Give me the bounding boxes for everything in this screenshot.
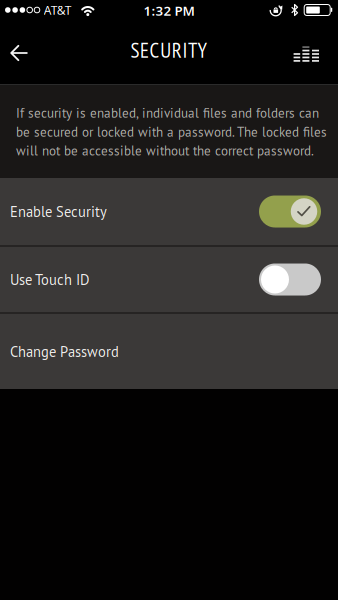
staticText: AT&T: [44, 2, 72, 18]
staticText: 1:32 PM: [143, 2, 194, 19]
button[interactable]: Use Touch ID: [259, 263, 321, 295]
staticText: be secured or locked with a password. Th…: [16, 123, 327, 140]
staticText: If security is enabled, individual files…: [16, 104, 319, 121]
staticText: Enable Security: [10, 202, 107, 221]
button[interactable]: Enable Security: [259, 195, 321, 227]
staticText: Change Password: [10, 342, 119, 361]
staticText: will not be accessible without the corre…: [16, 142, 314, 159]
button[interactable]: Change Password: [0, 314, 338, 389]
button[interactable]: View options: [294, 42, 338, 62]
staticText: Use Touch ID: [10, 270, 90, 289]
button[interactable]: Back: [0, 43, 28, 61]
staticText: SECURITY: [130, 36, 208, 64]
